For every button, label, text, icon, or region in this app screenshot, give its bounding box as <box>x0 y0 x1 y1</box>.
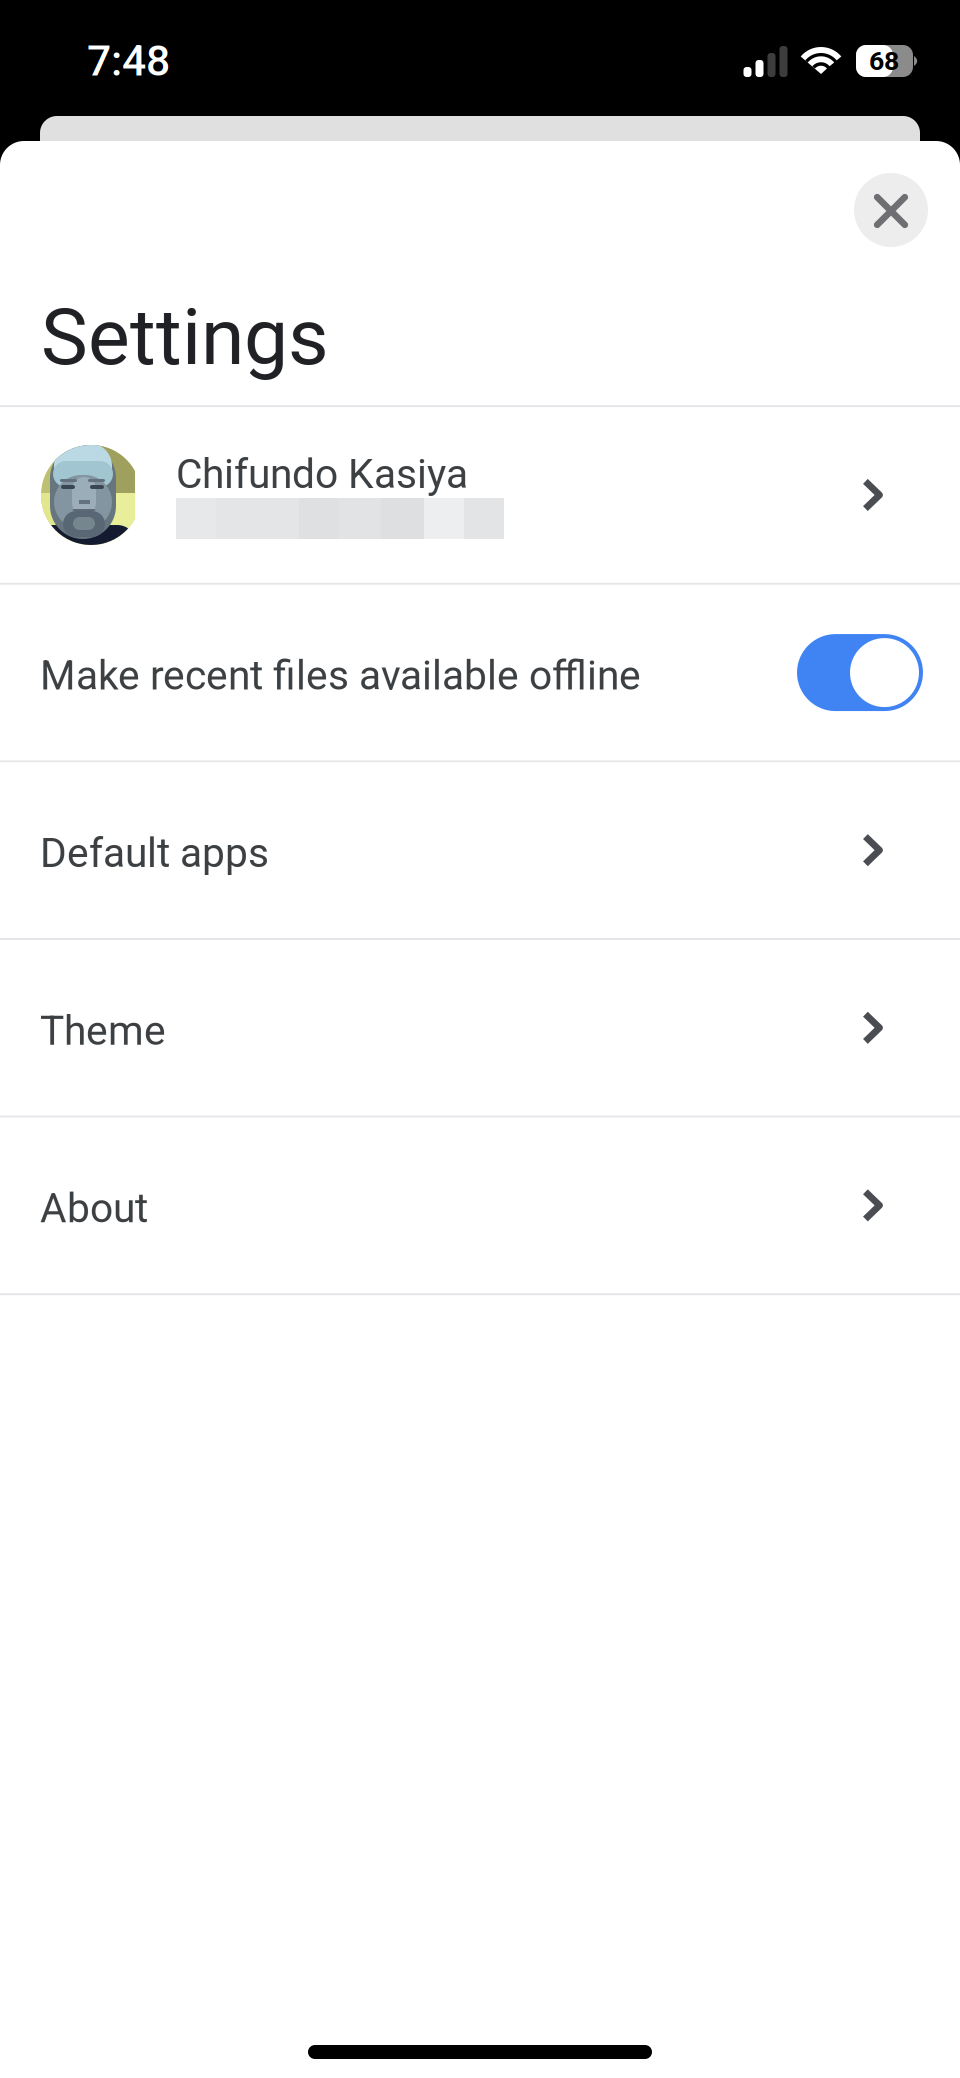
staticText: Settings <box>41 291 329 383</box>
staticText: Theme <box>40 1007 166 1055</box>
button[interactable]: Make recent files available offline <box>0 585 960 760</box>
staticText: Default apps <box>40 829 269 877</box>
staticText: 7:48 <box>87 36 170 86</box>
button[interactable]: Theme <box>0 940 960 1116</box>
staticText: Make recent files available offline <box>40 652 641 699</box>
button[interactable]: Close <box>854 173 928 247</box>
button[interactable]: Chifundo Kasiya <box>0 407 960 583</box>
staticText: About <box>40 1185 148 1232</box>
button[interactable]: About <box>0 1118 960 1293</box>
staticText: Chifundo Kasiya <box>176 450 468 498</box>
staticText: 68 <box>869 45 899 77</box>
button[interactable]: Default apps <box>0 762 960 938</box>
